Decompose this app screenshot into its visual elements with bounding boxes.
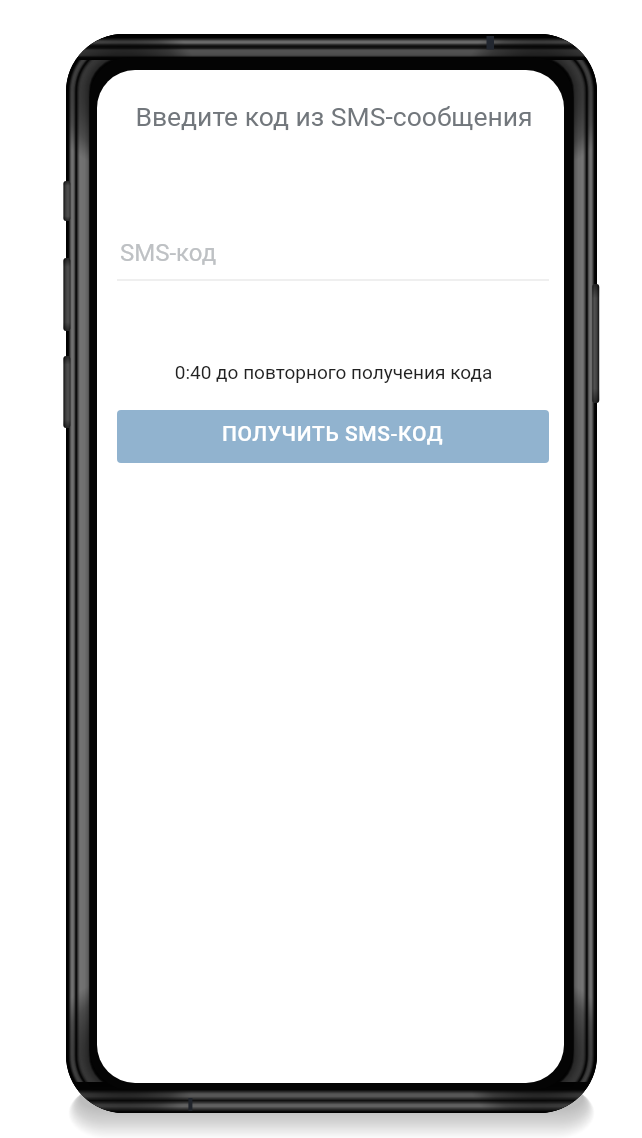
button[interactable]: ПОЛУЧИТЬ SMS-КОД [117,410,549,463]
staticText: SMS-код [120,239,217,267]
staticText: Введите код из SMS-сообщения [104,101,564,132]
staticText: 0:40 до повторного получения кода [103,361,564,383]
staticText: ПОЛУЧИТЬ SMS-КОД [222,422,444,447]
